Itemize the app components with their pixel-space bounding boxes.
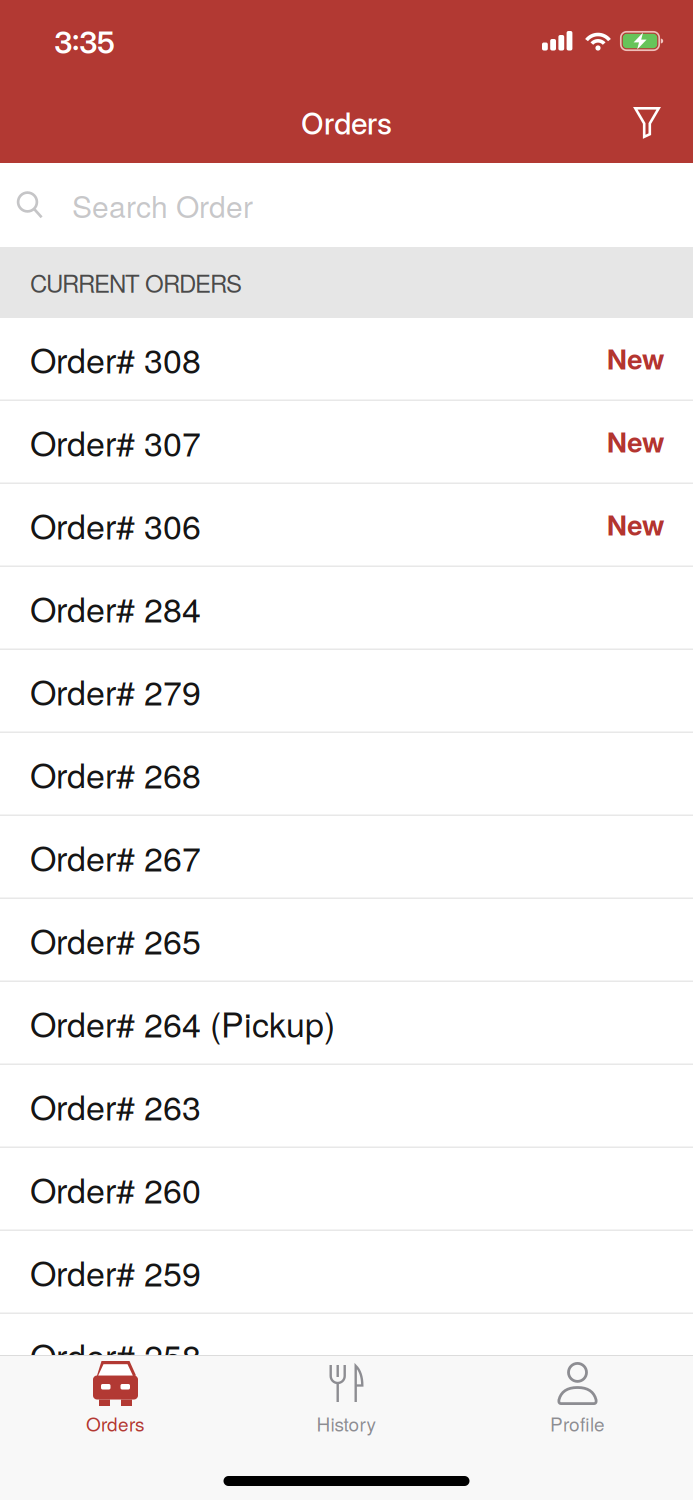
staticText: Order# 263: [30, 1082, 201, 1129]
staticText: Order# 306: [30, 501, 201, 548]
button[interactable]: Order# 307: [0, 401, 693, 484]
staticText: Search Order: [72, 184, 253, 226]
staticText: Order# 258: [30, 1331, 201, 1378]
staticText: New: [607, 343, 664, 376]
button[interactable]: Order# 259: [0, 1231, 693, 1314]
button[interactable]: Order# 260: [0, 1148, 693, 1231]
button[interactable]: Order# 308: [0, 318, 693, 401]
button[interactable]: Filter: [634, 107, 693, 138]
button[interactable]: Order# 264 (Pickup): [0, 982, 693, 1065]
button[interactable]: Order# 279: [0, 650, 693, 733]
staticText: Profile: [550, 1410, 605, 1436]
staticText: Order# 308: [30, 335, 201, 382]
staticText: New: [607, 509, 664, 542]
staticText: 3:35: [54, 24, 115, 61]
staticText: History: [316, 1410, 376, 1436]
button[interactable]: Order# 284: [0, 567, 693, 650]
staticText: Orders: [86, 1410, 145, 1436]
staticText: Order# 264 (Pickup): [30, 999, 335, 1046]
staticText: Order# 265: [30, 916, 201, 963]
button[interactable]: Order# 268: [0, 733, 693, 816]
button[interactable]: Profile: [462, 1361, 693, 1436]
staticText: CURRENT ORDERS: [30, 266, 242, 299]
staticText: Order# 267: [30, 833, 201, 880]
staticText: New: [607, 426, 664, 459]
staticText: Orders: [301, 105, 392, 142]
button[interactable]: Order# 267: [0, 816, 693, 899]
staticText: Order# 259: [30, 1248, 201, 1295]
staticText: Order# 279: [30, 667, 201, 714]
button[interactable]: Order# 258: [0, 1314, 693, 1397]
staticText: Order# 268: [30, 750, 201, 797]
staticText: Order# 284: [30, 584, 201, 631]
button[interactable]: Order# 265: [0, 899, 693, 982]
button[interactable]: Order# 306: [0, 484, 693, 567]
button[interactable]: Order# 263: [0, 1065, 693, 1148]
button[interactable]: History: [231, 1361, 462, 1436]
button[interactable]: Search Order: [0, 163, 693, 247]
staticText: Order# 260: [30, 1165, 201, 1212]
staticText: Order# 307: [30, 418, 201, 465]
button[interactable]: Orders: [0, 1361, 231, 1436]
